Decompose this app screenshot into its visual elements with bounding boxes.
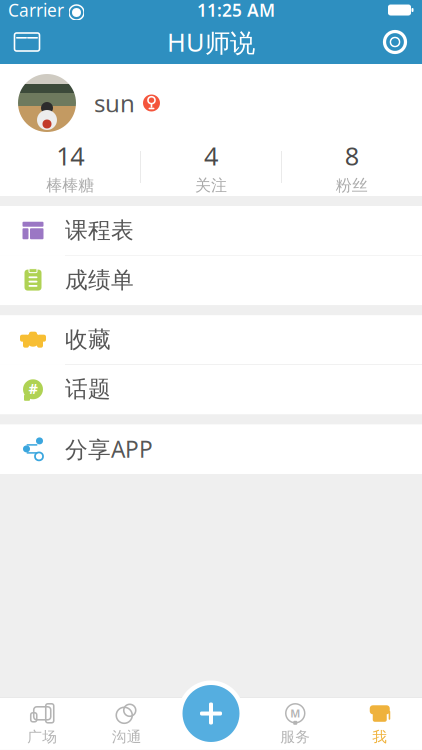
staticText: 课程表	[65, 217, 134, 244]
staticText: 广场	[27, 728, 57, 746]
staticText: 分享APP	[65, 434, 153, 464]
staticText: sun	[94, 87, 135, 119]
button[interactable]: 14	[0, 133, 140, 201]
staticText: #	[28, 379, 37, 398]
button[interactable]: Profile photo	[0, 74, 76, 132]
staticText: 沟通	[112, 728, 142, 746]
button[interactable]: #	[0, 365, 422, 414]
button[interactable]: 成绩单	[0, 256, 422, 305]
button[interactable]: 8	[282, 133, 422, 201]
button[interactable]: 我	[337, 697, 422, 750]
staticText: 成绩单	[65, 266, 134, 294]
button[interactable]: Create	[182, 685, 239, 742]
staticText: 11:25 AM	[197, 0, 275, 21]
staticText: 棒棒糖	[46, 175, 94, 195]
staticText: 14	[56, 139, 84, 172]
button[interactable]: 课程表	[0, 206, 422, 256]
button[interactable]: 收藏	[0, 315, 422, 365]
staticText: 8	[345, 139, 359, 172]
staticText: M	[290, 706, 300, 720]
button[interactable]: Settings	[368, 20, 422, 64]
staticText: 4	[204, 139, 218, 172]
button[interactable]: Messages	[0, 20, 54, 64]
staticText: 服务	[280, 728, 310, 746]
staticText: 话题	[65, 375, 111, 403]
staticText: 粉丝	[336, 175, 368, 195]
button[interactable]: M	[253, 697, 337, 750]
staticText: Carrier	[8, 0, 64, 21]
staticText: 我	[372, 728, 387, 746]
button[interactable]: 广场	[0, 697, 84, 750]
staticText: 关注	[195, 175, 227, 195]
staticText: HU师说	[167, 25, 255, 59]
button[interactable]: 沟通	[84, 697, 169, 750]
staticText: 收藏	[65, 326, 111, 354]
button[interactable]: 分享APP	[0, 424, 422, 474]
button[interactable]: 4	[141, 133, 281, 201]
